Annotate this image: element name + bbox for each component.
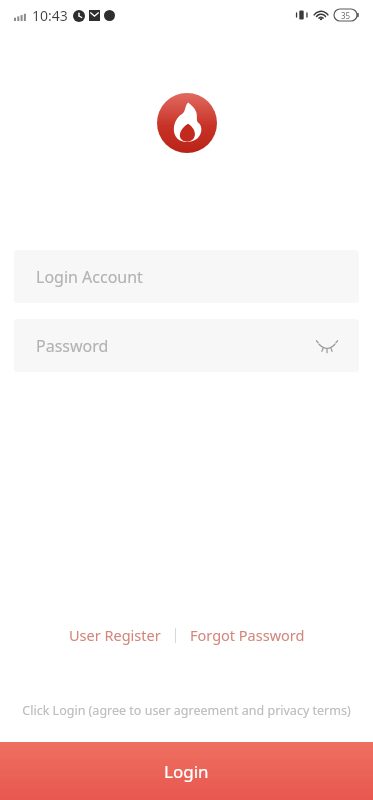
staticText: Forgot Password <box>190 625 305 645</box>
staticText: 10:43 <box>32 6 68 25</box>
button[interactable]: Password <box>14 319 359 372</box>
button[interactable]: Login Account <box>14 250 359 303</box>
staticText: 35 <box>341 10 351 21</box>
staticText: Login <box>164 760 209 783</box>
staticText: User Register <box>69 625 161 645</box>
button[interactable]: Login <box>0 742 373 800</box>
button[interactable]: Show password <box>311 330 343 362</box>
staticText: Click Login (agree to user agreement and… <box>0 702 373 719</box>
staticText: Login Account <box>36 266 143 288</box>
button[interactable]: User Register <box>63 621 167 649</box>
button[interactable]: Forgot Password <box>184 621 311 649</box>
staticText: Password <box>36 335 109 357</box>
